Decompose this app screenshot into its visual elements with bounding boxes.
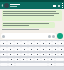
button[interactable] <box>0 53 7 56</box>
button[interactable]: Back <box>0 2 4 9</box>
button[interactable] <box>0 41 7 45</box>
button[interactable] <box>7 47 14 51</box>
button[interactable] <box>48 58 55 61</box>
button[interactable] <box>21 53 28 56</box>
button[interactable] <box>34 47 40 51</box>
button[interactable] <box>27 58 34 61</box>
button[interactable] <box>46 41 52 45</box>
button[interactable]: Voice call <box>57 2 61 9</box>
button[interactable] <box>20 58 27 61</box>
button[interactable] <box>4 3 9 8</box>
button[interactable] <box>8 58 14 61</box>
button[interactable]: Video call <box>52 2 57 9</box>
button[interactable] <box>1 33 56 39</box>
button[interactable] <box>2 10 62 21</box>
button[interactable] <box>34 41 40 45</box>
button[interactable]: More options <box>61 2 64 9</box>
button[interactable] <box>46 53 52 56</box>
button[interactable] <box>21 41 28 45</box>
button[interactable] <box>14 53 21 56</box>
button[interactable] <box>58 47 64 51</box>
button[interactable] <box>40 47 46 51</box>
button[interactable] <box>0 47 7 51</box>
button[interactable] <box>7 41 14 45</box>
button[interactable] <box>55 58 64 61</box>
button[interactable] <box>28 53 34 56</box>
button[interactable] <box>34 58 41 61</box>
button[interactable] <box>46 47 52 51</box>
button[interactable] <box>58 41 64 45</box>
button[interactable] <box>0 63 8 66</box>
button[interactable] <box>52 41 58 45</box>
button[interactable] <box>40 41 46 45</box>
button[interactable] <box>8 63 15 66</box>
button[interactable] <box>55 63 64 66</box>
button[interactable] <box>40 53 46 56</box>
button[interactable] <box>58 53 64 56</box>
button[interactable]: Voice message <box>57 33 63 39</box>
button[interactable] <box>52 47 58 51</box>
button[interactable] <box>14 58 20 61</box>
button[interactable] <box>21 47 28 51</box>
button[interactable] <box>2 22 55 28</box>
button[interactable] <box>41 58 48 61</box>
button[interactable] <box>34 53 40 56</box>
button[interactable] <box>14 47 21 51</box>
button[interactable] <box>48 63 55 66</box>
button[interactable] <box>28 47 34 51</box>
button[interactable] <box>0 58 8 61</box>
button[interactable] <box>28 41 34 45</box>
button[interactable] <box>7 53 14 56</box>
button[interactable] <box>52 53 58 56</box>
button[interactable] <box>14 41 21 45</box>
